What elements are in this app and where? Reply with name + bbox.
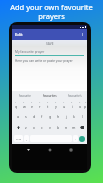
button[interactable]: l [78, 111, 86, 122]
button[interactable]: favourite's [62, 91, 87, 100]
staticText: 2 [23, 101, 25, 104]
button[interactable]: 5 [44, 100, 52, 111]
staticText: m [72, 125, 76, 130]
staticText: i [72, 104, 73, 109]
staticText: . [75, 137, 76, 141]
staticText: x [33, 125, 35, 130]
button[interactable]: a [14, 111, 22, 122]
button[interactable]: favourite [12, 91, 37, 100]
staticText: e [31, 104, 34, 109]
staticText: c [41, 125, 43, 130]
button[interactable]: v [46, 122, 54, 133]
staticText: j [66, 114, 67, 119]
staticText: w [23, 104, 26, 109]
button[interactable]: . [73, 135, 78, 142]
staticText: o [79, 104, 82, 109]
button[interactable]: Shift [14, 122, 22, 133]
staticText: r [39, 104, 41, 109]
staticText: SAVE [46, 42, 54, 46]
button[interactable]: Back [24, 145, 33, 154]
button[interactable]: j [62, 111, 70, 122]
button[interactable]: 8 [68, 100, 76, 111]
button[interactable]: 0 [84, 100, 87, 111]
staticText: Add your own favourite prayers [0, 2, 103, 21]
staticText: 1 [15, 101, 17, 104]
button[interactable]: f [38, 111, 46, 122]
button[interactable]: m [70, 122, 78, 133]
staticText: favourites [43, 94, 57, 98]
staticText: p [84, 104, 87, 109]
button[interactable]: 4 [36, 100, 44, 111]
button[interactable]: 2 [20, 100, 28, 111]
staticText: favourite's [68, 94, 82, 98]
button[interactable]: n [62, 122, 70, 133]
button[interactable]: x [30, 122, 38, 133]
button[interactable]: k [70, 111, 78, 122]
button[interactable]: 7 [60, 100, 68, 111]
staticText: My favourite prayer [15, 50, 45, 54]
staticText: 7 [63, 101, 65, 104]
staticText: favourite [19, 94, 31, 98]
button[interactable]: h [54, 111, 62, 122]
staticText: d [33, 114, 36, 119]
staticText: s [25, 114, 27, 119]
button[interactable]: More options [80, 32, 85, 37]
staticText: k [73, 114, 75, 119]
staticText: t [47, 104, 49, 109]
staticText: q [15, 104, 18, 109]
button[interactable]: SAVE [38, 41, 62, 47]
button[interactable]: 6 [52, 100, 60, 111]
staticText: g [49, 114, 52, 119]
staticText: z [25, 125, 27, 130]
staticText: 5 [47, 101, 49, 104]
staticText: Edit [15, 32, 23, 38]
staticText: 3 [31, 101, 33, 104]
staticText: 0 [85, 101, 87, 104]
button[interactable]: favourites [37, 91, 62, 100]
staticText: l [82, 114, 83, 119]
button[interactable]: , [24, 135, 29, 142]
button[interactable]: z [22, 122, 30, 133]
staticText: h [57, 114, 60, 119]
staticText: , [26, 137, 27, 141]
staticText: 9 [79, 101, 81, 104]
button[interactable]: d [30, 111, 38, 122]
button[interactable]: g [46, 111, 54, 122]
button[interactable]: Backspace [78, 122, 86, 133]
staticText: v [49, 125, 51, 130]
button[interactable]: s [22, 111, 30, 122]
staticText: a [17, 114, 20, 119]
staticText: y [55, 104, 57, 109]
staticText: 4 [39, 101, 41, 104]
staticText: ?123 [16, 137, 22, 140]
button[interactable]: Recent apps [66, 145, 75, 154]
staticText: u [63, 104, 66, 109]
button[interactable]: Enter [79, 136, 85, 142]
staticText: n [65, 125, 68, 130]
staticText: 8 [71, 101, 73, 104]
button[interactable]: c [38, 122, 46, 133]
button[interactable]: ?123 [14, 135, 23, 142]
staticText: Here you can write or paste your prayer [15, 59, 73, 63]
button[interactable]: Home [45, 145, 54, 154]
staticText: 6 [55, 101, 57, 104]
button[interactable]: 1 [12, 100, 20, 111]
button[interactable]: b [54, 122, 62, 133]
staticText: f [41, 114, 43, 119]
staticText: b [57, 125, 60, 130]
button[interactable]: 3 [28, 100, 36, 111]
button[interactable]: 9 [76, 100, 84, 111]
